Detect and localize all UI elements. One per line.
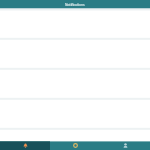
- button[interactable]: Profile: [100, 141, 150, 150]
- button[interactable]: Notifications: [0, 141, 50, 150]
- button[interactable]: Explore: [50, 141, 100, 150]
- button[interactable]: [0, 129, 150, 141]
- staticText: Notifications: [65, 3, 85, 7]
- button[interactable]: [0, 9, 150, 37]
